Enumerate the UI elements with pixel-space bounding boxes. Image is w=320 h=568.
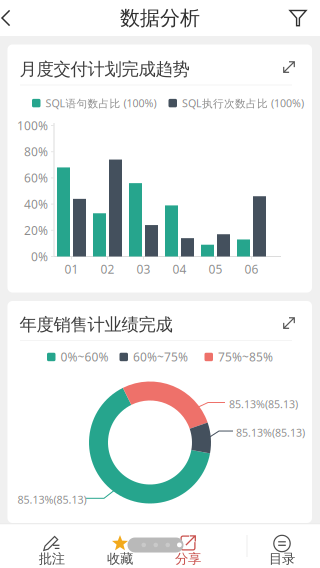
staticText: 分享 bbox=[175, 550, 201, 567]
button[interactable]: 批注 bbox=[24, 532, 80, 568]
staticText: 20% bbox=[24, 222, 48, 238]
staticText: 40% bbox=[24, 196, 48, 212]
staticText: SQL语句数占比 (100%) bbox=[45, 96, 156, 110]
staticText: 02 bbox=[100, 261, 114, 277]
staticText: 01 bbox=[64, 261, 78, 277]
staticText: 年度销售计业绩完成 bbox=[19, 314, 172, 335]
staticText: 80% bbox=[24, 144, 48, 160]
staticText: 75%~85% bbox=[218, 349, 273, 365]
staticText: 100% bbox=[17, 117, 48, 133]
staticText: 0%~60% bbox=[60, 349, 108, 365]
staticText: SQL执行次数占比 (100%) bbox=[182, 96, 304, 110]
button[interactable]: 放大年度销售业绩图表 bbox=[276, 310, 302, 336]
staticText: 60%~75% bbox=[133, 349, 188, 365]
staticText: 60% bbox=[24, 170, 48, 186]
button[interactable]: 放大月度交付计划图表 bbox=[276, 54, 302, 80]
staticText: 04 bbox=[172, 261, 186, 277]
staticText: 0% bbox=[31, 248, 48, 264]
staticText: 85.13%(85.13) bbox=[17, 492, 86, 507]
button[interactable]: 目录 bbox=[254, 532, 310, 568]
staticText: 批注 bbox=[39, 550, 65, 567]
staticText: 月度交付计划完成趋势 bbox=[19, 58, 189, 80]
button[interactable]: 筛选 bbox=[276, 0, 320, 36]
staticText: 85.13%(85.13) bbox=[236, 425, 305, 440]
button[interactable]: 分享 bbox=[160, 532, 216, 568]
staticText: 数据分析 bbox=[120, 6, 200, 30]
staticText: 06 bbox=[244, 261, 258, 277]
staticText: 05 bbox=[208, 261, 222, 277]
staticText: 收藏 bbox=[107, 550, 133, 567]
button[interactable]: 返回 bbox=[0, 0, 40, 36]
staticText: 85.13%(85.13) bbox=[229, 397, 298, 411]
staticText: 目录 bbox=[269, 550, 295, 567]
staticText: 03 bbox=[136, 261, 150, 277]
button[interactable]: 收藏 bbox=[92, 532, 148, 568]
